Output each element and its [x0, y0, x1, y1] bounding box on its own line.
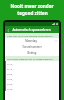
staticText: € 10,- [7, 62, 14, 65]
button[interactable]: Bedrag [5, 50, 59, 56]
staticText: Maandag [7, 39, 55, 43]
staticText: Automatisch opwaarderen [12, 28, 51, 32]
button[interactable]: Maandag [5, 38, 59, 44]
staticText: € 40,- [7, 87, 14, 90]
staticText: € 25,- [7, 77, 14, 80]
button[interactable]: € 10,- [5, 61, 59, 66]
button[interactable]: € 15,- [5, 66, 59, 71]
staticText: Toestelnummer [7, 45, 57, 49]
button[interactable]: Back [5, 27, 11, 33]
button[interactable]: € 25,- [5, 76, 59, 81]
staticText: Bedrag [7, 51, 57, 55]
staticText: Hier stel je in of je tegoed automatisch [7, 34, 53, 37]
staticText: € 15,- [7, 67, 14, 70]
staticText: Het saldo bedrag valt in opwaarderen? [7, 57, 53, 60]
button[interactable]: € 20,- [5, 71, 59, 76]
staticText: tegoed zitten [17, 10, 48, 16]
staticText: € 20,- [7, 72, 14, 75]
staticText: € 30,- [7, 82, 14, 85]
button[interactable]: Toestelnummer [5, 44, 59, 50]
button[interactable]: € 30,- [5, 81, 59, 86]
staticText: Nooit meer zonder [10, 3, 54, 9]
button[interactable]: € 40,- [5, 86, 59, 91]
